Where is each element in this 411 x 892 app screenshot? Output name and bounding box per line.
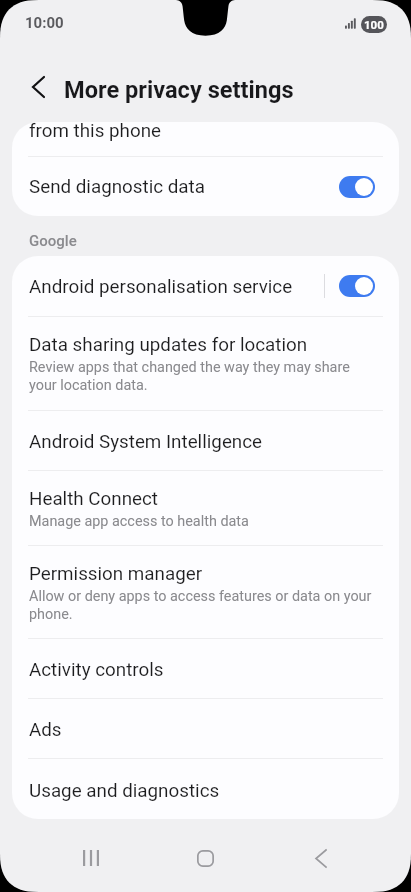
button[interactable]: Navigate up: [19, 68, 57, 106]
staticText: Send diagnostic data: [29, 176, 205, 198]
button[interactable]: Android personalisation service: [12, 256, 399, 316]
button[interactable]: Ads: [12, 699, 399, 758]
staticText: More privacy settings: [64, 76, 294, 104]
button[interactable]: Health Connect: [12, 471, 399, 545]
staticText: 10:00: [25, 14, 64, 32]
staticText: Ads: [29, 719, 62, 741]
staticText: Usage and diagnostics: [29, 780, 220, 802]
button[interactable]: Recent apps: [68, 835, 114, 881]
staticText: Manage app access to health data: [29, 513, 249, 530]
staticText: Google: [29, 232, 77, 250]
button[interactable]: Send diagnostic data: [12, 157, 399, 216]
staticText: Android personalisation service: [29, 276, 293, 298]
button[interactable]: Back: [298, 835, 344, 881]
staticText: Android System Intelligence: [29, 431, 263, 453]
button[interactable]: Usage and diagnostics: [12, 759, 399, 819]
staticText: Allow or deny apps to access features or…: [29, 588, 379, 623]
staticText: Review apps that changed the way they ma…: [29, 359, 379, 394]
staticText: Activity controls: [29, 659, 164, 681]
button[interactable]: Activity controls: [12, 639, 399, 698]
staticText: Permission manager: [29, 563, 203, 585]
staticText: 100: [364, 18, 384, 31]
staticText: from this phone: [29, 122, 162, 142]
button[interactable]: Data sharing updates for location: [12, 317, 399, 410]
button[interactable]: Permission manager: [12, 546, 399, 638]
staticText: Data sharing updates for location: [29, 334, 308, 356]
staticText: Health Connect: [29, 488, 159, 510]
button[interactable]: [339, 176, 375, 198]
button[interactable]: Home: [182, 835, 228, 881]
button[interactable]: Android System Intelligence: [12, 411, 399, 470]
button[interactable]: [339, 275, 375, 297]
